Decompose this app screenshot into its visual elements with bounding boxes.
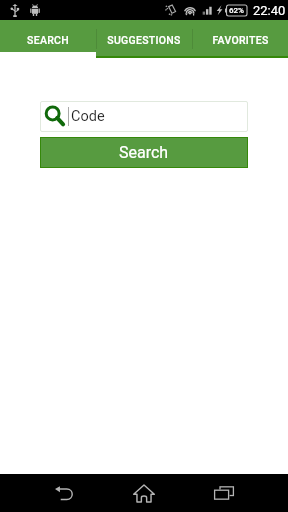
button[interactable]: SEARCH bbox=[0, 20, 96, 58]
staticText: SUGGESTIONS bbox=[107, 34, 181, 46]
staticText: 62% bbox=[229, 6, 244, 15]
button[interactable]: Recent apps bbox=[184, 474, 264, 512]
button[interactable]: Home bbox=[104, 474, 184, 512]
button[interactable]: SUGGESTIONS bbox=[96, 20, 192, 58]
button[interactable]: Search bbox=[40, 137, 248, 168]
button[interactable]: Back bbox=[24, 474, 104, 512]
button[interactable]: FAVORITES bbox=[192, 20, 288, 58]
staticText: SEARCH bbox=[27, 34, 69, 46]
staticText: FAVORITES bbox=[212, 34, 269, 46]
staticText: 22:40 bbox=[253, 3, 286, 18]
button[interactable]: Code bbox=[40, 101, 248, 132]
staticText: Code bbox=[71, 108, 105, 125]
staticText: Search bbox=[119, 143, 169, 162]
